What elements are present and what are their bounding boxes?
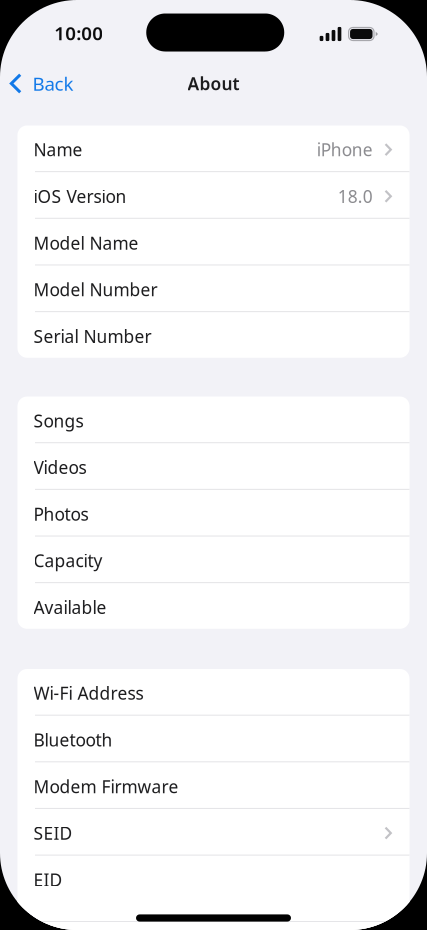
button[interactable]: Capacity [17,536,409,582]
button[interactable]: EID [17,856,409,901]
button[interactable]: Wi-Fi Address [17,669,409,715]
button[interactable]: Available [17,583,409,629]
button[interactable]: Videos [17,443,409,489]
staticText: Back [32,71,73,96]
staticText: Capacity [33,549,102,572]
button[interactable]: Songs [17,397,409,442]
button[interactable]: Name [17,125,409,171]
staticText: Bluetooth [33,728,112,751]
button[interactable]: SEID [17,809,409,855]
staticText: Serial Number [33,325,151,348]
staticText: Wi-Fi Address [33,682,143,705]
staticText: Songs [33,409,83,432]
staticText: Modem Firmware [33,775,178,798]
staticText: Name [33,138,82,161]
staticText: 18.0 [338,185,373,208]
staticText: Available [33,596,106,619]
staticText: iOS Version [33,185,126,208]
staticText: Model Number [33,278,157,301]
staticText: Model Name [33,231,138,254]
button[interactable]: Modem Firmware [17,762,409,808]
button[interactable]: Serial Number [17,312,409,358]
staticText: EID [33,868,62,891]
staticText: Photos [33,502,88,525]
button[interactable]: Photos [17,490,409,535]
staticText: iPhone [317,138,373,161]
button[interactable]: iOS Version [17,172,409,218]
button[interactable]: Back [0,63,83,103]
staticText: SEID [33,822,72,845]
staticText: About [187,72,239,95]
button[interactable]: Model Name [17,219,409,264]
staticText: Videos [33,456,86,479]
staticText: 10:00 [54,21,103,45]
button[interactable]: Model Number [17,265,409,311]
button[interactable]: Bluetooth [17,716,409,761]
